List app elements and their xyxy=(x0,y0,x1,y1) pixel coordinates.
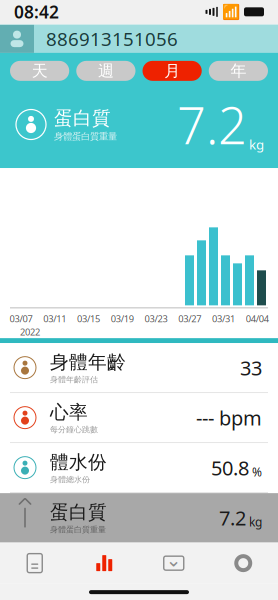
button[interactable]: 年 xyxy=(209,61,268,81)
staticText: 03/23 xyxy=(144,312,167,325)
button[interactable]: Trends xyxy=(69,543,139,583)
staticText: 週 xyxy=(98,61,114,81)
staticText: kg xyxy=(249,514,262,530)
button[interactable]: 心率 xyxy=(0,393,278,443)
staticText: 03/11 xyxy=(43,312,66,325)
staticText: 月 xyxy=(164,61,180,81)
button[interactable]: 週 xyxy=(76,61,135,81)
staticText: 7.2 xyxy=(219,504,246,531)
button[interactable]: 身體年齡 xyxy=(0,343,278,393)
staticText: 身體總水份 xyxy=(50,475,90,484)
staticText: 年 xyxy=(230,61,246,81)
button[interactable]: 天 xyxy=(10,61,69,81)
staticText: kg xyxy=(249,135,264,153)
staticText: 08:42 xyxy=(14,0,59,23)
staticText: 蛋白質 xyxy=(54,107,111,130)
staticText: 身體蛋白質重量 xyxy=(54,131,117,142)
staticText: 03/19 xyxy=(111,312,134,325)
staticText: 2022 xyxy=(20,326,40,338)
staticText: 身體年齡 xyxy=(50,351,126,374)
staticText: ⌄ xyxy=(166,549,182,571)
button[interactable]: Messages xyxy=(139,543,208,583)
staticText: 心率 xyxy=(50,401,88,424)
staticText: 身體年齡評估 xyxy=(50,375,98,384)
staticText: 7.2 xyxy=(177,91,247,158)
staticText: 886913151056 xyxy=(46,26,178,51)
button[interactable]: 月 xyxy=(142,61,202,81)
staticText: 📶 xyxy=(222,3,240,20)
button[interactable]: Records xyxy=(0,543,69,583)
staticText: 33 xyxy=(240,354,262,381)
staticText: 50.8 xyxy=(211,454,249,481)
staticText: 身體蛋白質重量 xyxy=(50,525,106,534)
staticText: 天 xyxy=(32,61,48,81)
staticText: % xyxy=(252,464,262,480)
staticText: 03/15 xyxy=(77,312,100,325)
staticText: 蛋白質 xyxy=(50,501,107,524)
staticText: 03/27 xyxy=(178,312,201,325)
staticText: 03/31 xyxy=(212,312,235,325)
staticText: 03/07 xyxy=(9,312,32,325)
button[interactable]: 蛋白質 xyxy=(0,493,278,542)
staticText: 04/04 xyxy=(246,312,269,325)
staticText: 每分鐘心跳數 xyxy=(50,425,98,434)
staticText: --- bpm xyxy=(196,404,262,431)
staticText: 體水份 xyxy=(50,451,107,474)
button[interactable]: 體水份 xyxy=(0,443,278,493)
button[interactable]: Settings xyxy=(208,543,278,583)
